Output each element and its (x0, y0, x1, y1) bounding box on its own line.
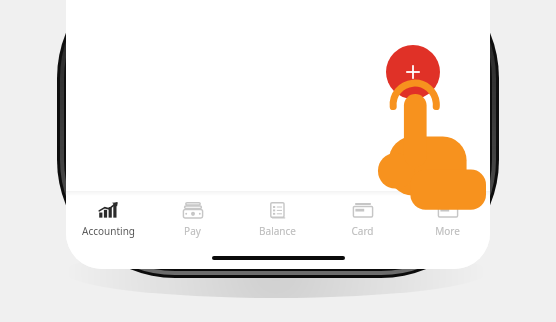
staticText: More (435, 224, 460, 238)
button[interactable]: Pay (150, 196, 235, 238)
staticText: Pay (184, 224, 201, 238)
button[interactable]: More (405, 196, 490, 238)
button[interactable]: Balance (235, 196, 320, 238)
button[interactable]: Card (320, 196, 405, 238)
staticText: Card (351, 224, 374, 238)
staticText: Balance (259, 224, 296, 238)
button[interactable]: Add (386, 45, 440, 99)
staticText: Accounting (82, 224, 135, 238)
button[interactable]: Accounting (66, 196, 150, 238)
